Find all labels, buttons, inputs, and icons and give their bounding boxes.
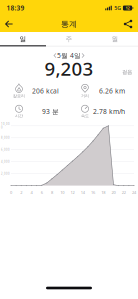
staticText: 걸음 (122, 69, 132, 75)
staticText: 12 (125, 5, 129, 11)
staticText: 2,000 (1, 172, 10, 175)
staticText: 주 (65, 35, 72, 43)
staticText: 6 (41, 190, 43, 195)
button[interactable]: 월 (92, 32, 138, 46)
button[interactable]: 일 (0, 32, 46, 46)
staticText: 20 (111, 190, 115, 195)
button[interactable]: Next day (78, 50, 88, 60)
staticText: 0 (10, 190, 12, 195)
button[interactable]: Previous day (50, 50, 60, 60)
staticText: 16 (91, 190, 95, 195)
staticText: 22 (122, 190, 126, 195)
staticText: 24 (132, 190, 136, 195)
staticText: 칼로리 (13, 93, 25, 98)
staticText: 거리 (81, 93, 89, 98)
button[interactable]: Share (119, 16, 137, 32)
staticText: 월 (111, 35, 118, 43)
button[interactable]: Back (0, 16, 18, 32)
staticText: 6,000 (1, 148, 10, 151)
staticText: 206 kcal (32, 87, 59, 95)
staticText: 5G (114, 4, 121, 12)
staticText: 2.78 km/h (93, 107, 125, 116)
staticText: 10 (60, 190, 64, 195)
staticText: 8 (51, 190, 53, 195)
staticText: 일 (19, 35, 26, 43)
staticText: 18 (101, 190, 105, 195)
staticText: 속도 (81, 113, 89, 118)
staticText: 12 (70, 190, 74, 195)
staticText: 통계 (61, 19, 77, 29)
staticText: 4,000 (1, 160, 10, 163)
staticText: 10,000 (1, 122, 10, 129)
staticText: 5월 4일 (57, 51, 81, 60)
staticText: 8,000 (1, 136, 10, 139)
staticText: 18:39 (6, 4, 24, 12)
button[interactable]: 주 (46, 32, 92, 46)
staticText: 93 분 (42, 107, 59, 116)
staticText: 6.26 km (99, 87, 125, 95)
staticText: 시간 (15, 113, 23, 118)
staticText: 4 (30, 190, 32, 195)
staticText: 9,203 (44, 56, 93, 81)
staticText: 2 (20, 190, 22, 195)
staticText: 14 (81, 190, 85, 195)
